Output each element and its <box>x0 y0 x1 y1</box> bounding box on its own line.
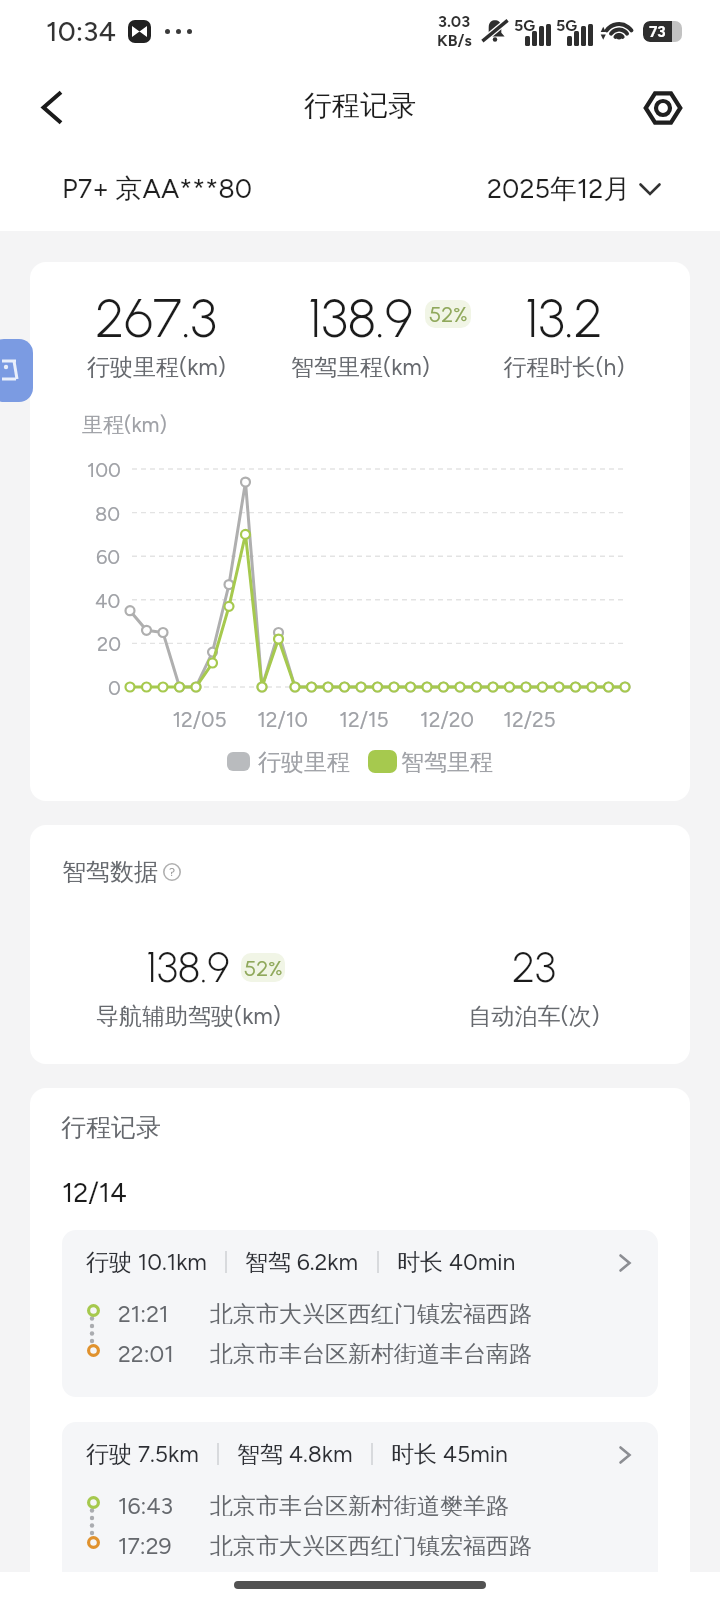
staticText: 里程(km) <box>82 412 167 438</box>
staticText: 自动泊车(次) <box>468 1002 600 1031</box>
staticText: 80 <box>95 502 121 526</box>
staticText: 2025年12月 <box>487 172 631 206</box>
staticText: 5G <box>514 16 536 35</box>
staticText: 267.3 <box>95 286 217 351</box>
staticText: 12/20 <box>420 707 474 732</box>
staticText: 行驶里程(km) <box>87 353 226 382</box>
staticText: 5G <box>556 16 578 35</box>
staticText: 时长 45min <box>391 1440 508 1469</box>
staticText: 行驶里程 <box>258 748 350 774</box>
staticText: 导航辅助驾驶(km) <box>96 1002 281 1031</box>
staticText: 52% <box>244 955 283 981</box>
staticText: 3.03 <box>438 12 471 31</box>
staticText: 智驾数据 <box>62 857 158 887</box>
staticText: 智驾里程(km) <box>291 353 430 382</box>
staticText: 17:29 <box>118 1532 172 1556</box>
staticText: 12/15 <box>339 707 389 732</box>
staticText: 40 <box>95 589 121 613</box>
staticText: 22:01 <box>118 1340 174 1364</box>
staticText: 时长 40min <box>397 1248 516 1277</box>
staticText: 10:34 <box>46 14 116 48</box>
button[interactable]: Settings <box>634 79 692 137</box>
staticText: 21:21 <box>118 1300 169 1324</box>
staticText: 北京市大兴区西红门镇宏福西路 <box>210 1300 532 1324</box>
button[interactable]: 2025年12月 <box>487 172 661 206</box>
staticText: 16:43 <box>118 1492 174 1516</box>
staticText: 73 <box>649 23 666 41</box>
staticText: 12/14 <box>62 1176 127 1208</box>
staticText: 智驾 6.2km <box>245 1248 359 1277</box>
staticText: P7+ 京AA***80 <box>62 172 253 206</box>
staticText: 100 <box>87 458 121 482</box>
staticText: 智驾里程 <box>401 748 493 774</box>
staticText: 行程记录 <box>61 1112 161 1143</box>
staticText: 北京市丰台区新村街道樊羊路 <box>210 1492 509 1516</box>
staticText: 行驶 10.1km <box>86 1248 207 1277</box>
staticText: 12/10 <box>257 707 308 732</box>
button[interactable]: 行驶 10.1km <box>62 1230 658 1397</box>
staticText: 0 <box>108 676 121 700</box>
staticText: 138.9 <box>146 941 230 993</box>
staticText: 12/05 <box>172 707 227 732</box>
staticText: 23 <box>512 941 556 993</box>
staticText: 智驾 4.8km <box>237 1440 353 1469</box>
staticText: ? <box>169 865 176 879</box>
staticText: 138.9 <box>308 286 413 351</box>
staticText: 12/25 <box>503 707 556 732</box>
staticText: 北京市大兴区西红门镇宏福西路 <box>210 1532 532 1556</box>
button[interactable]: Vehicle control <box>0 339 33 402</box>
staticText: 60 <box>96 545 121 569</box>
staticText: 52% <box>429 301 468 327</box>
staticText: 北京市丰台区新村街道丰台南路 <box>210 1340 532 1364</box>
staticText: 行驶 7.5km <box>86 1440 199 1469</box>
staticText: KB/s <box>437 31 472 50</box>
button[interactable]: Back <box>23 79 80 136</box>
staticText: 行程记录 <box>304 88 416 123</box>
button[interactable]: 行驶 7.5km <box>62 1422 658 1572</box>
staticText: 行程时长(h) <box>503 353 625 382</box>
staticText: 20 <box>97 632 121 656</box>
staticText: 13.2 <box>525 286 603 351</box>
